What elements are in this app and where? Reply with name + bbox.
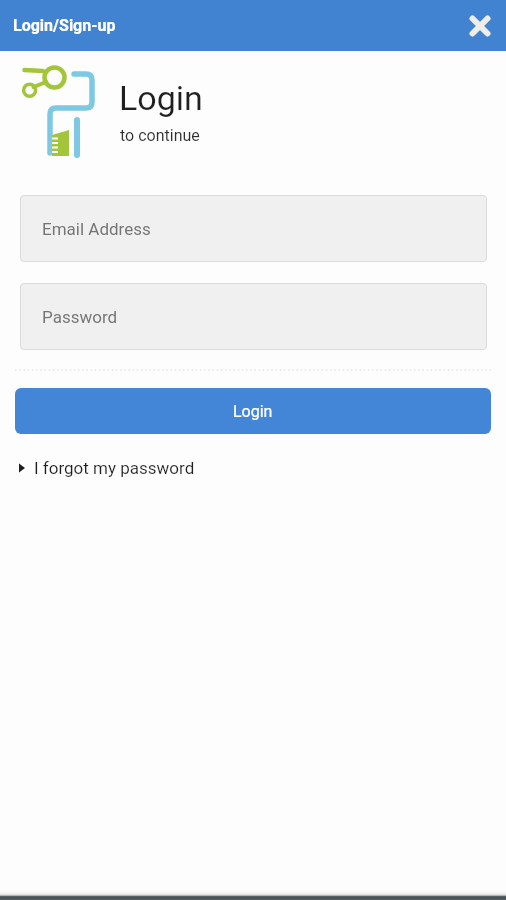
staticText: Password [42, 307, 118, 327]
staticText: Login [233, 402, 273, 421]
staticText: Login [119, 78, 203, 118]
staticText: Email Address [42, 219, 151, 239]
button[interactable]: I forgot my password [12, 452, 201, 484]
button[interactable]: Password [20, 283, 487, 350]
button[interactable]: Login [15, 388, 491, 434]
button[interactable] [462, 8, 498, 44]
button[interactable]: Email Address [20, 195, 487, 262]
staticText: Login/Sign-up [13, 16, 116, 35]
staticText: I forgot my password [34, 458, 195, 478]
staticText: to continue [120, 126, 200, 145]
